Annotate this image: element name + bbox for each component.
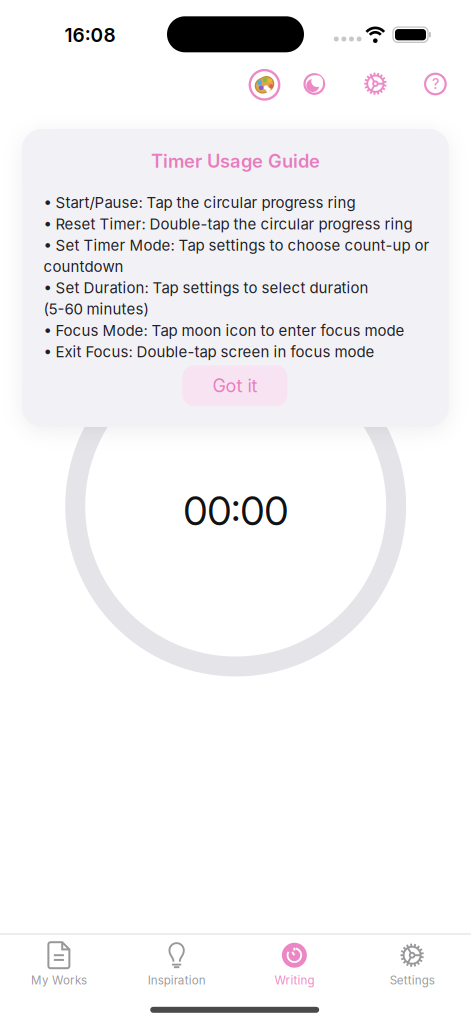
staticText: (5-60 minutes)	[43, 300, 148, 318]
button[interactable]: Writing	[235, 933, 353, 995]
staticText: • Focus Mode: Tap moon icon to enter foc…	[43, 321, 404, 339]
staticText: • Start/Pause: Tap the circular progress…	[43, 194, 355, 212]
staticText: Got it	[212, 375, 257, 397]
button[interactable]: Settings	[353, 933, 471, 995]
staticText: 00:00	[183, 487, 288, 535]
button[interactable]: Inspiration	[118, 933, 236, 995]
staticText: Writing	[274, 973, 314, 987]
staticText: Inspiration	[148, 973, 206, 987]
staticText: • Reset Timer: Double-tap the circular p…	[43, 215, 412, 233]
staticText: ?	[432, 75, 439, 92]
button[interactable]: Help	[420, 69, 450, 99]
staticText: countdown	[43, 257, 123, 276]
staticText: My Works	[31, 973, 87, 987]
staticText: • Exit Focus: Double-tap screen in focus…	[43, 343, 374, 361]
staticText: 16:08	[64, 23, 115, 46]
staticText: • Set Duration: Tap settings to select d…	[43, 279, 368, 297]
button[interactable]: Theme	[247, 68, 281, 102]
button[interactable]: My Works	[0, 933, 118, 995]
button[interactable]: Focus mode	[299, 69, 329, 99]
button[interactable]: Settings	[360, 69, 390, 99]
staticText: Timer Usage Guide	[151, 150, 320, 172]
button[interactable]: Got it	[182, 365, 287, 406]
staticText: • Set Timer Mode: Tap settings to choose…	[43, 236, 429, 254]
staticText: Settings	[390, 973, 435, 987]
button[interactable]: Start or pause timer	[65, 335, 406, 676]
